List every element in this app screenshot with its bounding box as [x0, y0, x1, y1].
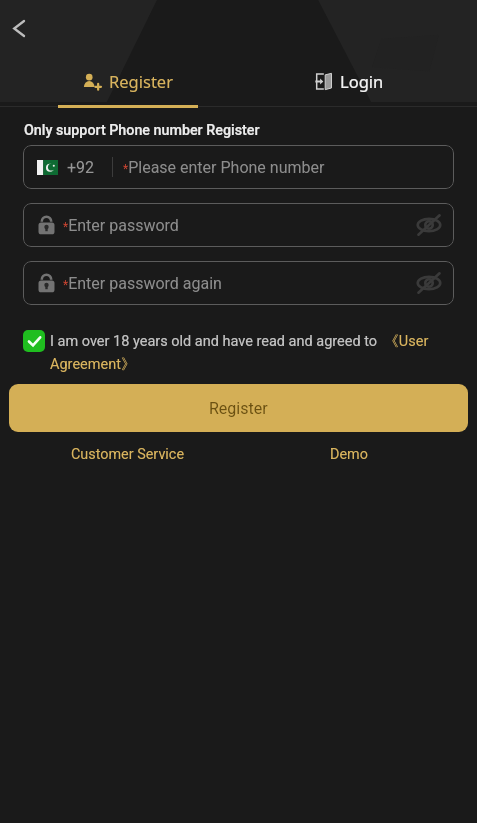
staticText: Demo: [330, 446, 368, 463]
button[interactable]: Login: [238, 60, 460, 102]
button[interactable]: *Enter password again: [23, 261, 454, 305]
button[interactable]: I am over 18 checkbox: [23, 330, 45, 352]
button[interactable]: Register: [17, 60, 238, 102]
button[interactable]: Toggle password visibility: [412, 266, 446, 300]
button[interactable]: Back: [0, 6, 41, 50]
staticText: Register: [109, 70, 173, 92]
button[interactable]: +92: [23, 145, 454, 189]
button[interactable]: Toggle password visibility: [412, 208, 446, 242]
staticText: *Enter password: [63, 216, 179, 235]
button[interactable]: *Enter password: [23, 203, 454, 247]
button[interactable]: Demo: [322, 441, 376, 468]
staticText: *Enter password again: [63, 274, 222, 293]
staticText: Customer Service: [71, 446, 185, 463]
staticText: Login: [340, 70, 384, 92]
staticText: *Please enter Phone number: [123, 158, 325, 177]
button[interactable]: Register: [9, 384, 468, 432]
staticText: I am over 18 years old and have read and…: [50, 332, 455, 374]
staticText: +92: [67, 158, 95, 177]
staticText: Only support Phone number Register: [24, 122, 260, 139]
staticText: Register: [209, 399, 268, 418]
button[interactable]: Customer Service: [63, 441, 193, 468]
